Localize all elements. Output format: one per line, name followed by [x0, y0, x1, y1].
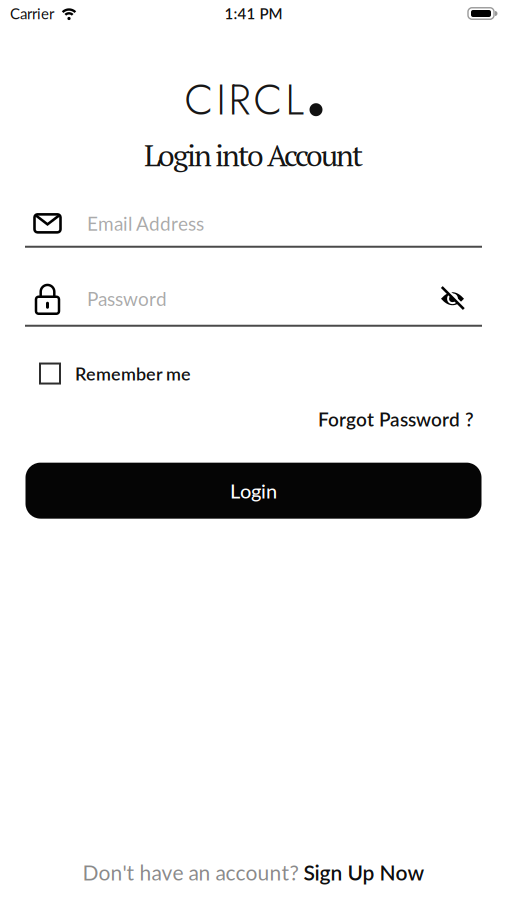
staticText: 1:41 PM [224, 4, 282, 22]
staticText: Password [87, 287, 167, 310]
staticText: Email Address [87, 212, 204, 235]
staticText: Forgot Password ? [318, 408, 474, 431]
staticText: Sign Up Now [303, 860, 424, 885]
staticText: Login into Account [144, 135, 363, 175]
staticText: Carrier [10, 4, 54, 22]
staticText: Login [230, 479, 277, 503]
staticText: Don't have an account? [82, 860, 303, 885]
staticText: Remember me [75, 363, 191, 384]
staticText: CIRCL [184, 69, 304, 130]
